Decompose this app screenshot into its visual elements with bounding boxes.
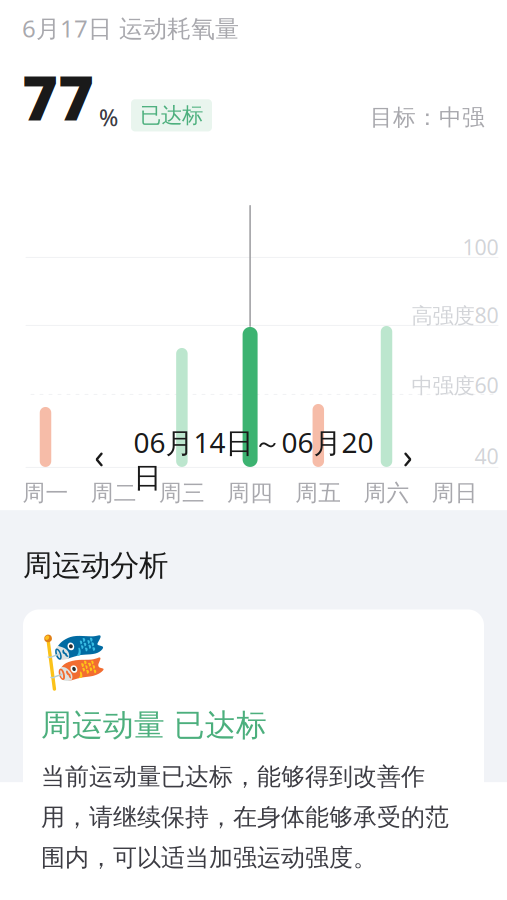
staticText: 周一 — [22, 479, 68, 507]
staticText: 中强度60 — [411, 371, 498, 399]
staticText: 6月17日 运动耗氧量 — [22, 12, 239, 44]
staticText: 周五 — [295, 479, 341, 507]
staticText: 周六 — [363, 479, 409, 507]
staticText: 已达标 — [140, 102, 203, 128]
staticText: 周运动分析 — [23, 547, 168, 583]
button[interactable]: 下一周 — [383, 437, 427, 481]
staticText: 目标：中强 — [370, 104, 485, 131]
staticText: 77 — [22, 56, 94, 137]
staticText: 当前运动量已达标，能够得到改善作用，请继续保持，在身体能够承受的范围内，可以适当… — [41, 762, 449, 872]
staticText: 40 — [474, 442, 498, 470]
staticText: 高强度80 — [411, 301, 498, 329]
button[interactable]: 上一周 — [79, 437, 123, 481]
staticText: 06月14日～06月20日 — [133, 424, 373, 495]
staticText: 周运动量 已达标 — [41, 706, 267, 744]
staticText: 100 — [462, 233, 498, 261]
staticText: 周三 — [159, 479, 205, 507]
staticText: 周四 — [227, 479, 273, 507]
staticText: 周日 — [432, 479, 478, 507]
staticText: % — [99, 102, 118, 132]
staticText: 🎏 — [41, 631, 107, 692]
staticText: 周二 — [91, 479, 137, 507]
